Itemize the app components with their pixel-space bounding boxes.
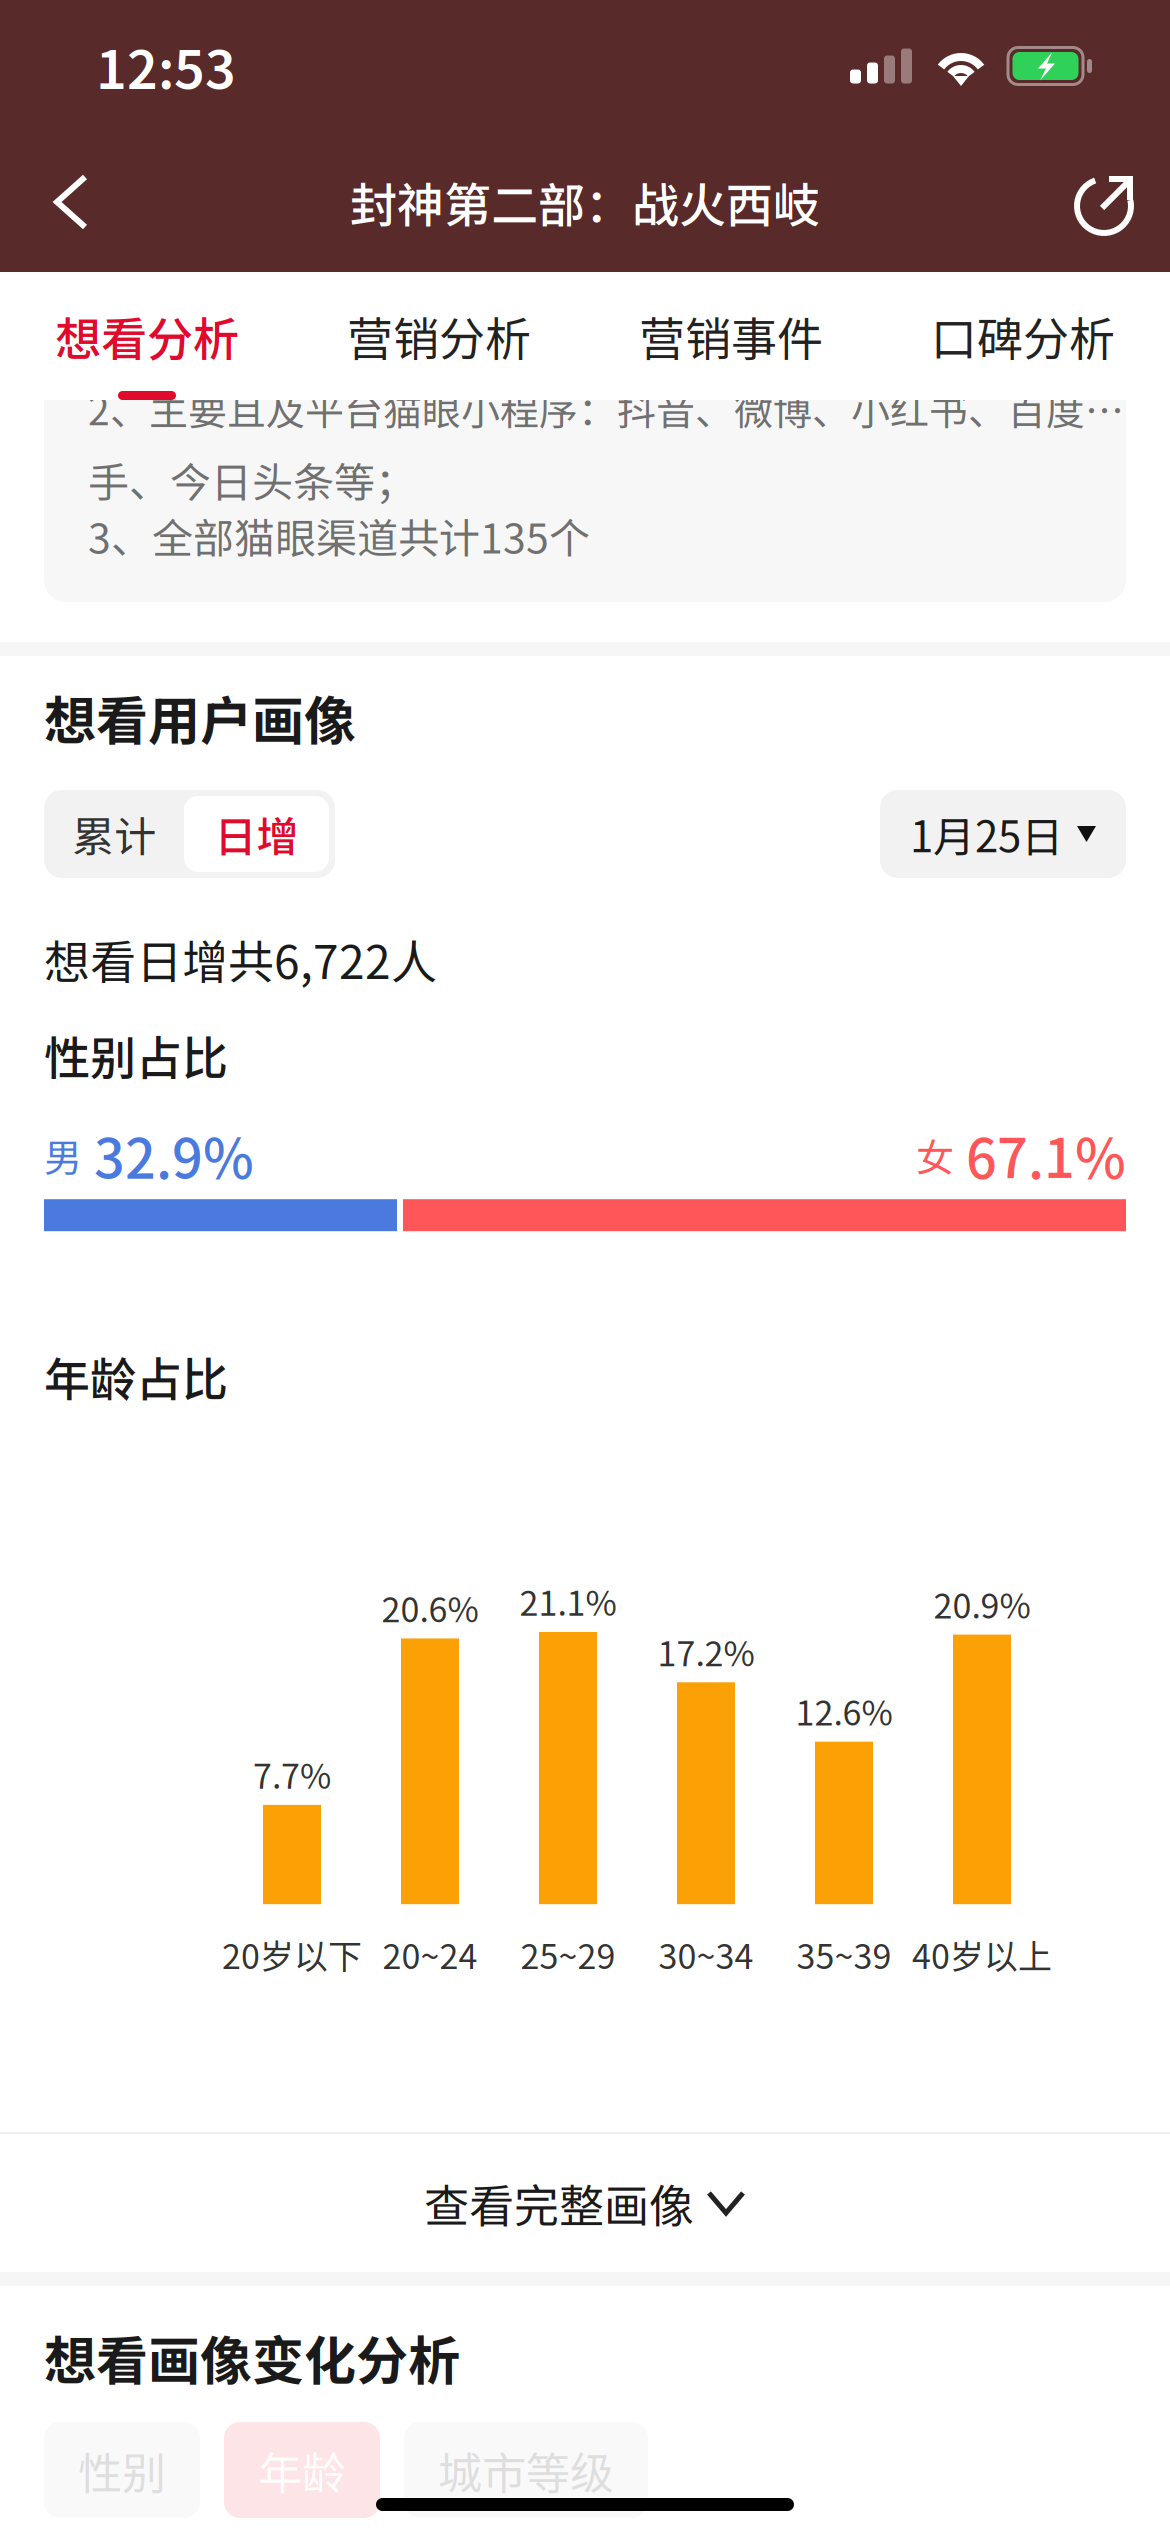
button[interactable]: 城市等级	[404, 2422, 648, 2518]
staticText: 年龄占比	[44, 1343, 228, 1409]
staticText: 性别占比	[44, 1022, 228, 1088]
button[interactable]: Back	[0, 137, 128, 267]
staticText: 年龄	[258, 2438, 346, 2502]
staticText: 累计	[72, 804, 156, 864]
staticText: 20岁以下	[222, 1930, 362, 1979]
button[interactable]: 年龄	[224, 2422, 380, 2518]
button[interactable]: 1月25日	[880, 790, 1126, 878]
staticText: 口碑分析	[931, 303, 1115, 369]
staticText: 1月25日	[910, 804, 1063, 864]
staticText: 17.2%	[657, 1627, 754, 1676]
staticText: 想看用户画像	[44, 679, 356, 755]
staticText: 查看完整画像	[424, 2170, 694, 2236]
staticText: 25~29	[520, 1930, 615, 1979]
staticText: 封神第二部：战火西岐	[350, 168, 820, 236]
button[interactable]: 性别	[44, 2422, 200, 2518]
staticText: 20~24	[382, 1930, 477, 1979]
button[interactable]: 营销事件	[585, 272, 877, 400]
staticText: 2、主要且及平台猫眼小程序：抖音、微博、小红书、百度、快	[88, 380, 1148, 436]
staticText: 性别	[78, 2438, 166, 2502]
staticText: 30~34	[658, 1930, 753, 1979]
staticText: 67.1%	[966, 1116, 1126, 1194]
button[interactable]: 累计	[44, 790, 184, 878]
staticText: 40岁以上	[912, 1930, 1052, 1979]
button[interactable]: 口碑分析	[877, 272, 1169, 400]
staticText: 营销分析	[347, 303, 531, 369]
button[interactable]: 查看完整画像	[0, 2134, 1170, 2272]
staticText: 男	[44, 1128, 82, 1183]
staticText: 营销事件	[639, 303, 823, 369]
button[interactable]: 营销分析	[293, 272, 585, 400]
staticText: 3、全部猫眼渠道共计135个	[88, 506, 590, 565]
staticText: 想看画像变化分析	[44, 2319, 460, 2395]
button[interactable]: Share	[1042, 134, 1170, 270]
staticText: 12.6%	[795, 1686, 892, 1735]
staticText: 想看日增共6,722人	[44, 926, 437, 992]
staticText: 35~39	[796, 1930, 891, 1979]
staticText: 女	[916, 1128, 954, 1183]
button[interactable]: 日增	[184, 796, 329, 872]
staticText: 城市等级	[438, 2438, 614, 2502]
staticText: 7.7%	[253, 1749, 331, 1798]
button[interactable]: 想看分析	[1, 272, 293, 400]
staticText: 想看分析	[55, 303, 239, 369]
staticText: 12:53	[96, 28, 236, 104]
staticText: 32.9%	[94, 1116, 254, 1194]
staticText: 20.9%	[933, 1579, 1030, 1628]
staticText: 日增	[214, 804, 298, 864]
staticText: 20.6%	[381, 1583, 478, 1632]
staticText: 21.1%	[519, 1576, 616, 1626]
staticText: 手、今日头条等；	[88, 450, 416, 509]
